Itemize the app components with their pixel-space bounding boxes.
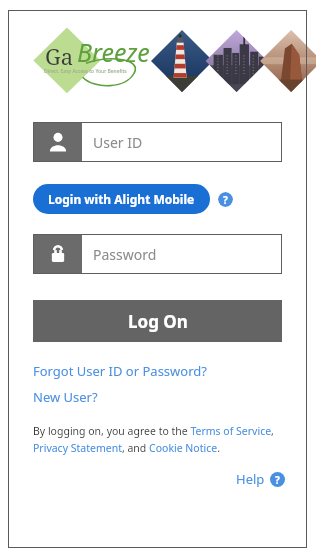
button[interactable]: Password (33, 234, 282, 274)
staticText: ? (223, 193, 228, 207)
staticText: ? (275, 473, 280, 487)
staticText: Forgot User ID or Password? (33, 362, 207, 380)
button[interactable]: Log On (33, 300, 282, 342)
staticText: By logging on, you agree to the Terms of… (33, 424, 287, 455)
button[interactable]: By logging on, you agree to the Terms of… (33, 424, 287, 455)
staticText: New User? (33, 388, 98, 406)
staticText: Login with Alight Mobile (48, 191, 195, 207)
staticText: Help (236, 470, 265, 488)
staticText: User ID (93, 133, 143, 152)
button[interactable]: Help (234, 468, 287, 490)
staticText: Breeze (77, 35, 150, 69)
button[interactable]: Forgot User ID or Password? (33, 361, 207, 381)
staticText: Direct. Easy Access to Your Benefits (44, 68, 127, 75)
staticText: Password (93, 245, 157, 264)
button[interactable]: User ID (33, 122, 282, 162)
button[interactable]: Help about Alight Mobile (218, 192, 233, 207)
staticText: Ga (45, 41, 74, 71)
button[interactable]: Login with Alight Mobile (33, 184, 210, 214)
staticText: Log On (128, 310, 188, 333)
button[interactable]: New User? (33, 387, 98, 407)
